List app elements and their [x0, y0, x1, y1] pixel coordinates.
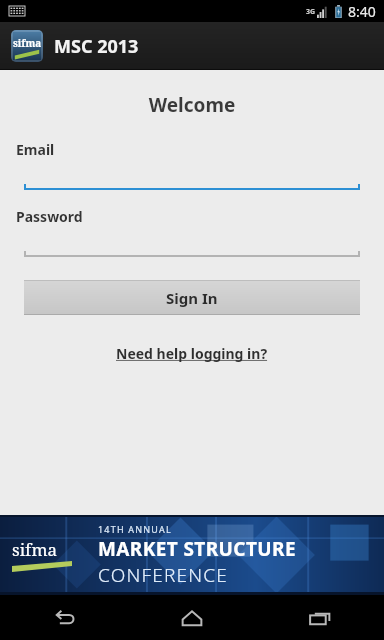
button[interactable]: [24, 159, 360, 191]
staticText: 14TH ANNUAL: [98, 523, 172, 535]
button[interactable]: Back: [0, 595, 128, 640]
button[interactable]: SIFMA Market Structure Conference advert…: [0, 515, 384, 595]
staticText: 8:40: [348, 2, 376, 21]
staticText: Password: [16, 207, 83, 226]
button[interactable]: Home: [128, 595, 256, 640]
button[interactable]: Sign In: [24, 280, 360, 315]
button[interactable]: [24, 226, 360, 258]
staticText: sifma: [13, 36, 42, 50]
staticText: CONFERENCE: [98, 562, 229, 588]
staticText: Sign In: [166, 288, 218, 308]
staticText: 3G: [306, 7, 316, 17]
staticText: Welcome: [0, 92, 384, 118]
staticText: Need help logging in?: [116, 344, 268, 363]
staticText: MSC 2013: [54, 34, 139, 59]
button[interactable]: Need help logging in?: [110, 342, 274, 365]
button[interactable]: Recent apps: [256, 595, 384, 640]
staticText: MARKET STRUCTURE: [98, 536, 296, 562]
staticText: Email: [16, 140, 55, 159]
staticText: sifma: [12, 538, 58, 561]
